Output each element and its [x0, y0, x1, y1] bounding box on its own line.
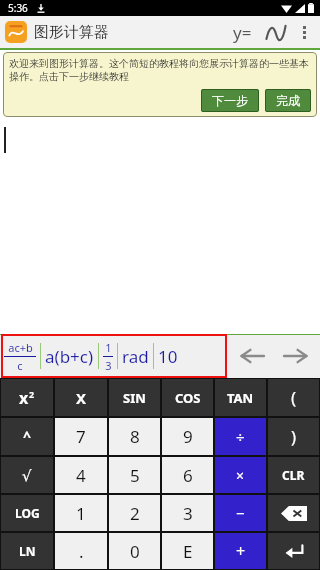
staticText: 1	[105, 340, 112, 355]
staticText: X	[76, 388, 87, 408]
staticText: ×	[236, 466, 245, 485]
staticText: 1	[76, 502, 86, 525]
staticText: 2	[130, 502, 140, 525]
button[interactable]: X	[55, 379, 107, 416]
staticText: ÷	[236, 427, 245, 447]
staticText: c	[17, 358, 23, 373]
staticText: 图形计算器	[34, 23, 109, 42]
button[interactable]: 完成	[265, 89, 311, 112]
staticText: TAN	[227, 389, 254, 407]
button[interactable]: LN	[1, 533, 53, 569]
staticText: x	[19, 387, 29, 409]
staticText: √	[22, 467, 32, 484]
button[interactable]: Function editor	[225, 17, 259, 47]
button[interactable]: ac+b	[0, 334, 40, 378]
button[interactable]: a(b+c)	[41, 334, 98, 378]
staticText: rad	[122, 345, 149, 368]
staticText: ac+b	[8, 340, 33, 355]
button[interactable]: E	[162, 533, 213, 569]
button[interactable]: LOG	[1, 495, 53, 531]
staticText: .	[79, 540, 84, 563]
staticText: 2	[29, 388, 35, 400]
button[interactable]: 4	[55, 457, 107, 493]
staticText: COS	[175, 389, 201, 407]
button[interactable]: rad	[118, 334, 153, 378]
staticText: (	[291, 386, 297, 409]
staticText: LN	[19, 543, 36, 559]
button[interactable]: 6	[162, 457, 213, 493]
button[interactable]: (	[268, 379, 319, 416]
staticText: 5	[130, 464, 140, 487]
staticText: +	[236, 540, 246, 562]
staticText: 欢迎来到图形计算器。这个简短的教程将向您展示计算器的一些基本操作。点击下一步继续…	[9, 57, 311, 83]
button[interactable]: )	[268, 418, 319, 455]
button[interactable]: x	[1, 379, 53, 416]
button[interactable]: COS	[162, 379, 213, 416]
button[interactable]: 3	[162, 495, 213, 531]
button[interactable]: 下一步	[201, 89, 259, 112]
staticText: E	[183, 540, 193, 563]
button[interactable]: More options	[293, 17, 315, 47]
staticText: y=	[233, 21, 252, 44]
staticText: 3	[105, 358, 112, 373]
button[interactable]: .	[55, 533, 107, 569]
staticText: 4	[76, 464, 86, 487]
button[interactable]: Backspace	[268, 495, 319, 531]
button[interactable]: 7	[55, 418, 107, 455]
button[interactable]: ^	[1, 418, 53, 455]
staticText: SIN	[123, 389, 146, 407]
staticText: a(b+c)	[45, 345, 94, 368]
button[interactable]: 5	[109, 457, 160, 493]
staticText: 5:36	[8, 1, 28, 15]
staticText: CLR	[282, 467, 305, 483]
button[interactable]: CLR	[268, 457, 319, 493]
staticText: 6	[183, 464, 193, 487]
button[interactable]: 1	[99, 334, 117, 378]
button[interactable]: −	[215, 495, 266, 531]
staticText: 完成	[276, 93, 300, 108]
button[interactable]: 1	[55, 495, 107, 531]
staticText: 3	[183, 502, 193, 525]
staticText: 8	[130, 425, 140, 448]
button[interactable]: SIN	[109, 379, 160, 416]
button[interactable]: TAN	[215, 379, 266, 416]
staticText: 7	[76, 425, 86, 448]
button[interactable]: 10	[154, 334, 182, 378]
button[interactable]: Move right	[274, 334, 316, 378]
button[interactable]: ÷	[215, 418, 266, 455]
button[interactable]: Graph	[259, 17, 293, 47]
staticText: LOG	[15, 505, 40, 521]
staticText: 10	[158, 345, 178, 368]
button[interactable]: 8	[109, 418, 160, 455]
button[interactable]: 9	[162, 418, 213, 455]
button[interactable]: Enter	[268, 533, 319, 569]
staticText: ^	[23, 427, 32, 446]
staticText: −	[236, 503, 245, 523]
button[interactable]: 2	[109, 495, 160, 531]
button[interactable]: ×	[215, 457, 266, 493]
staticText: 下一步	[212, 93, 248, 108]
staticText: )	[291, 425, 297, 448]
button[interactable]: 0	[109, 533, 160, 569]
staticText: 0	[130, 540, 140, 563]
button[interactable]: +	[215, 533, 266, 569]
staticText: 9	[183, 425, 193, 448]
button[interactable]: √	[1, 457, 53, 493]
button[interactable]: Move left	[232, 334, 274, 378]
